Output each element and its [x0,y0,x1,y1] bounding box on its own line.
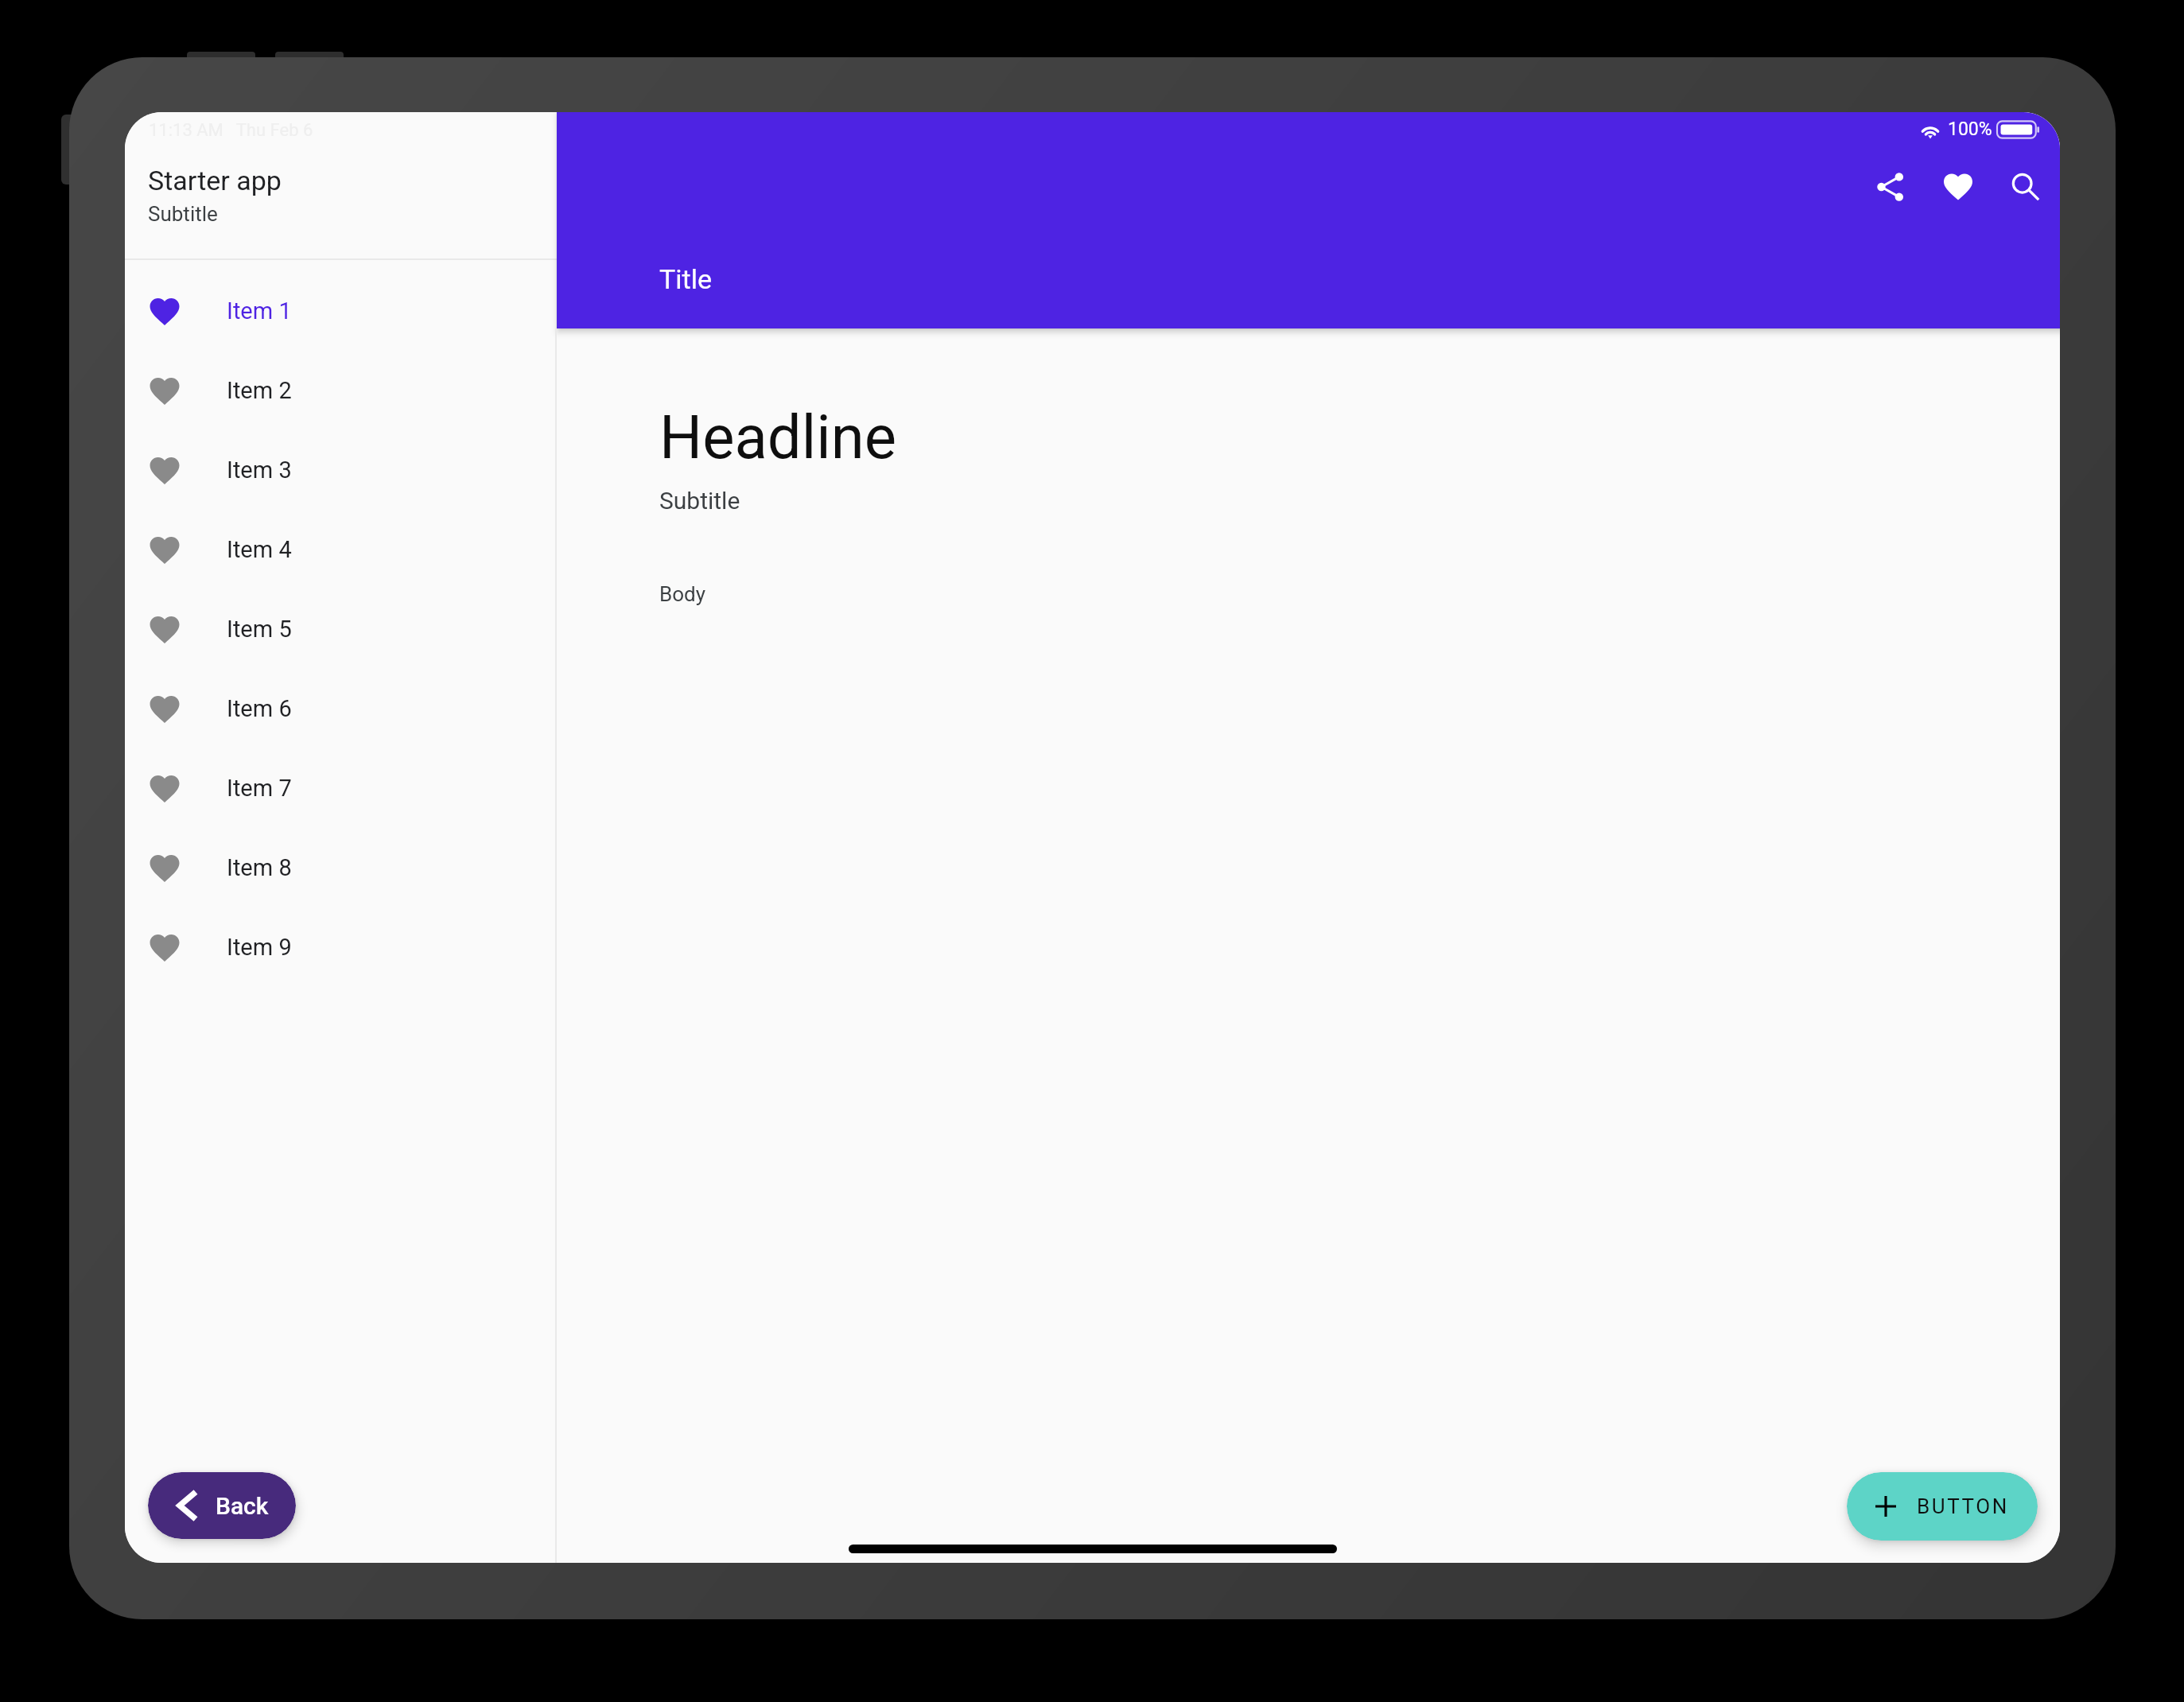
staticText: Headline [659,402,896,472]
staticText: Item 9 [227,934,292,961]
staticText: Subtitle [148,202,218,226]
button[interactable]: Item 2 [125,351,557,430]
staticText: Subtitle [659,487,740,515]
button[interactable]: Back [148,1472,296,1539]
button[interactable]: Item 8 [125,828,557,907]
staticText: Item 4 [227,536,292,563]
staticText: BUTTON [1917,1494,2009,1518]
staticText: Item 6 [227,695,292,722]
staticText: Body [659,582,705,606]
staticText: Back [216,1492,269,1520]
staticText: Item 8 [227,854,292,881]
button[interactable]: Item 3 [125,430,557,510]
staticText: Item 2 [227,377,292,404]
button[interactable]: Item 5 [125,589,557,669]
button[interactable]: Item 7 [125,748,557,828]
button[interactable]: Item 6 [125,669,557,748]
staticText: Item 1 [227,297,292,324]
button[interactable]: Item 9 [125,907,557,987]
button[interactable]: Item 1 [125,271,557,351]
button[interactable]: BUTTON [1847,1472,2038,1541]
staticText: Title [659,263,712,295]
staticText: Item 3 [227,457,292,484]
button[interactable]: Favorite [1924,153,1992,220]
staticText: 11:13 AM Thu Feb 6 [149,120,313,141]
staticText: 100% [1948,119,1992,140]
button[interactable]: Share [1856,153,1924,220]
staticText: Item 7 [227,775,292,802]
button[interactable]: Search [1992,153,2059,220]
staticText: Starter app [148,165,282,196]
button[interactable]: Item 4 [125,510,557,589]
staticText: Item 5 [227,616,292,643]
